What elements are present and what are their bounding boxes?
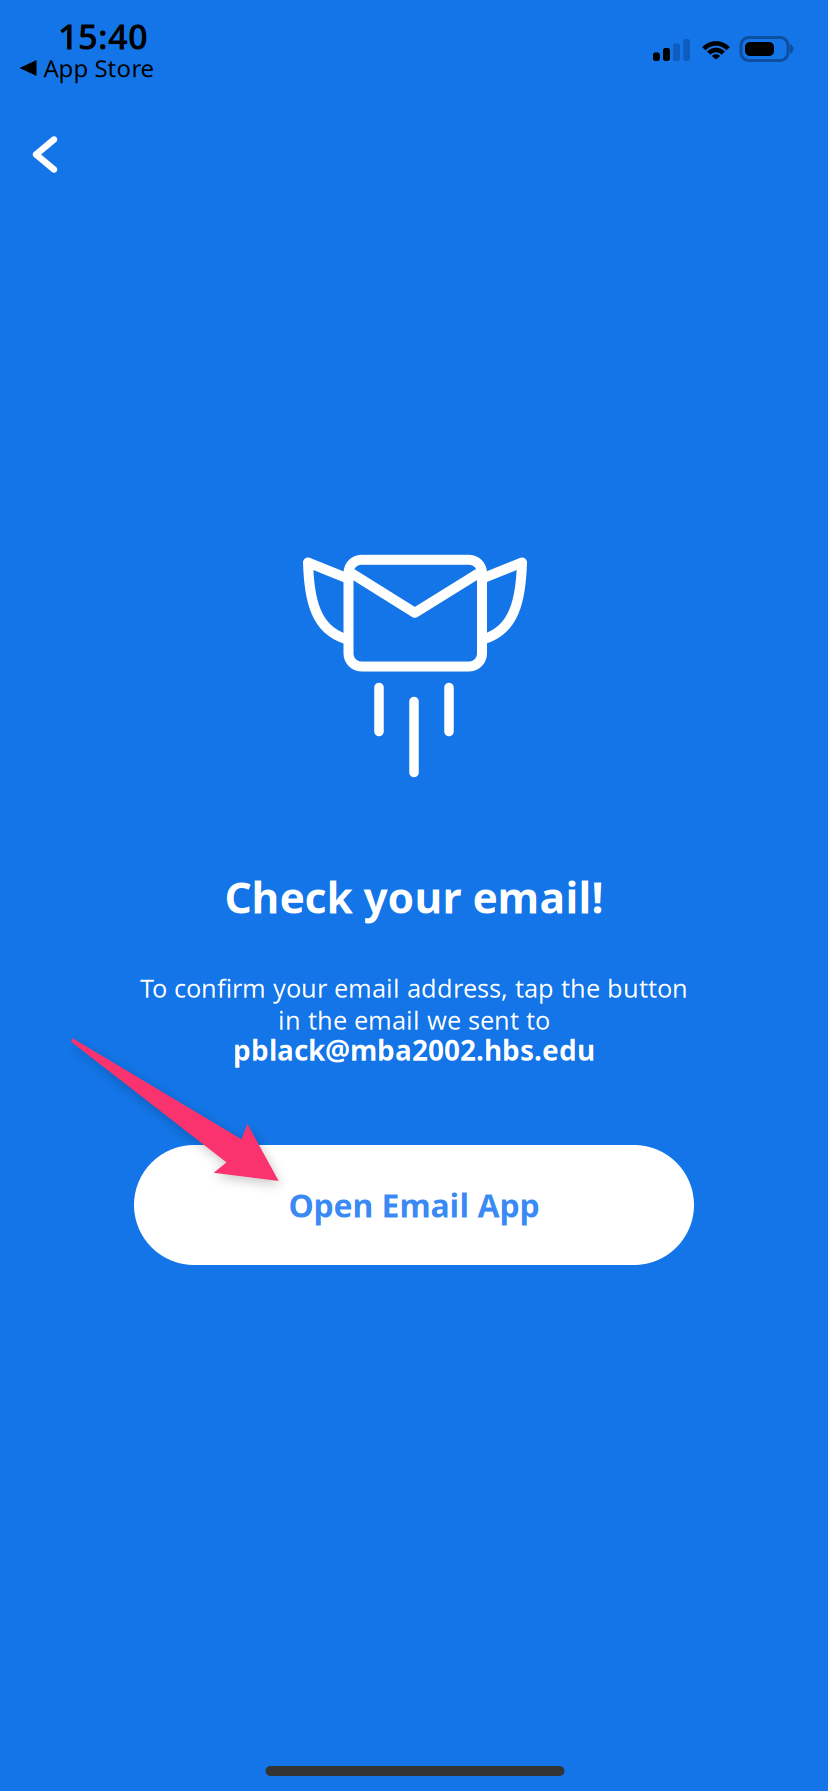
- staticText: App Store: [43, 52, 154, 84]
- staticText: To confirm your email address, tap the b…: [140, 971, 688, 1005]
- button[interactable]: Back: [2, 109, 92, 199]
- staticText: in the email we sent to: [278, 1003, 550, 1037]
- staticText: 15:40: [58, 13, 148, 59]
- staticText: Check your email!: [224, 869, 603, 925]
- button[interactable]: Open Email App: [134, 1145, 694, 1265]
- staticText: pblack@mba2002.hbs.edu: [233, 1031, 595, 1069]
- staticText: Open Email App: [288, 1184, 539, 1226]
